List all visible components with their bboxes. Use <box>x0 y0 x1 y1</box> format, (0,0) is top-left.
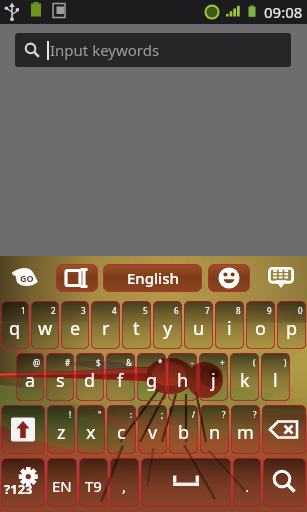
staticText: ?123 <box>4 480 33 498</box>
staticText: o <box>255 316 266 341</box>
button[interactable]: T9 <box>79 458 108 507</box>
staticText: s <box>56 368 65 393</box>
staticText: & <box>126 357 132 368</box>
button[interactable]: f <box>106 353 135 401</box>
staticText: , <box>122 476 127 496</box>
staticText: 2 <box>51 305 56 316</box>
button[interactable]: r <box>91 301 120 349</box>
button[interactable]: u <box>184 301 213 349</box>
staticText: / <box>192 409 195 420</box>
button[interactable]: i <box>215 301 244 349</box>
staticText: . <box>245 476 250 496</box>
staticText: f <box>117 368 124 393</box>
staticText: 6 <box>174 305 179 316</box>
button[interactable]: g <box>137 353 166 401</box>
staticText: 5 <box>143 305 148 316</box>
button[interactable]: y <box>153 301 182 349</box>
staticText: d <box>84 368 96 393</box>
staticText: - <box>191 357 194 368</box>
button[interactable]: j <box>199 353 228 401</box>
staticText: n <box>209 420 221 445</box>
staticText: Input keywords <box>50 40 160 60</box>
button[interactable]: p <box>277 301 306 349</box>
staticText: a <box>25 368 36 393</box>
button[interactable]: m <box>231 405 260 454</box>
staticText: 1 <box>21 305 26 316</box>
staticText: ? <box>222 409 226 420</box>
staticText: EN <box>52 476 72 496</box>
staticText: t <box>133 316 140 341</box>
button[interactable]: Keyboard layout <box>56 264 98 292</box>
button[interactable]: n <box>200 405 229 454</box>
staticText: 09:08 <box>264 2 303 22</box>
button[interactable]: Input keywords <box>15 33 291 67</box>
button[interactable]: v <box>138 405 167 454</box>
button[interactable]: , <box>110 458 139 507</box>
button[interactable]: English <box>103 264 202 292</box>
staticText: 4 <box>112 305 117 316</box>
staticText: i <box>227 316 232 341</box>
staticText: e <box>70 316 81 341</box>
staticText: ! <box>69 409 72 420</box>
staticText: 3 <box>81 305 86 316</box>
staticText: ( <box>253 357 256 368</box>
staticText: ? <box>253 409 257 420</box>
button[interactable]: l <box>261 353 290 401</box>
button[interactable]: e <box>61 301 89 349</box>
button[interactable]: a <box>16 353 44 401</box>
button[interactable]: q <box>1 301 29 349</box>
staticText: k <box>240 368 250 393</box>
staticText: 9 <box>267 305 272 316</box>
button[interactable]: b <box>169 405 198 454</box>
button[interactable]: . <box>233 458 261 507</box>
staticText: l <box>273 368 278 393</box>
staticText: + <box>220 357 225 368</box>
staticText: x <box>86 420 96 445</box>
button[interactable]: w <box>31 301 59 349</box>
staticText: 7 <box>205 305 210 316</box>
staticText: r <box>102 316 110 341</box>
staticText: z <box>57 420 66 445</box>
button[interactable]: x <box>77 405 105 454</box>
staticText: 8 <box>236 305 241 316</box>
button[interactable]: c <box>107 405 136 454</box>
staticText: g <box>146 368 158 393</box>
staticText: p <box>286 316 298 341</box>
staticText: : <box>130 409 133 420</box>
button[interactable]: z <box>47 405 75 454</box>
button[interactable]: t <box>122 301 151 349</box>
button[interactable]: s <box>46 353 74 401</box>
staticText: * <box>158 357 163 368</box>
staticText: ; <box>161 409 164 420</box>
button[interactable]: o <box>246 301 275 349</box>
button[interactable]: Search <box>263 458 306 507</box>
staticText: b <box>178 420 190 445</box>
staticText: GO <box>20 272 34 284</box>
staticText: English <box>127 268 179 288</box>
button[interactable]: Hide keyboard <box>268 267 294 288</box>
staticText: @ <box>33 357 41 368</box>
staticText: c <box>117 420 126 445</box>
staticText: $ <box>96 357 101 368</box>
button[interactable]: EN <box>47 458 77 507</box>
staticText: T9 <box>85 476 102 496</box>
staticText: # <box>65 357 71 368</box>
button[interactable]: d <box>76 353 104 401</box>
staticText: y <box>163 316 173 341</box>
button[interactable]: k <box>230 353 259 401</box>
button[interactable]: Shift <box>1 405 45 454</box>
button[interactable]: Emoji <box>208 264 250 292</box>
staticText: h <box>177 368 189 393</box>
staticText: " <box>98 409 102 420</box>
button[interactable]: Backspace <box>262 405 306 454</box>
button[interactable]: Space <box>141 458 231 507</box>
button[interactable]: ?123 <box>1 458 45 507</box>
staticText: j <box>211 368 216 393</box>
staticText: 0 <box>298 305 303 316</box>
staticText: ) <box>284 357 287 368</box>
staticText: m <box>237 420 254 445</box>
staticText: w <box>38 316 53 341</box>
button[interactable]: h <box>168 353 197 401</box>
button[interactable]: GO Keyboard menu <box>12 267 38 287</box>
staticText: q <box>9 316 21 341</box>
